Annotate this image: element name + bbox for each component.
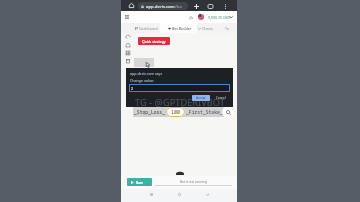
button[interactable]: app.deriv.com: [138, 2, 188, 10]
staticText: 2: [131, 86, 134, 91]
button[interactable]: Toolbar action: [124, 41, 131, 48]
button[interactable]: Dashboard: [135, 26, 158, 31]
button[interactable]: Back: [204, 191, 211, 198]
staticText: Tu: [225, 26, 230, 31]
button[interactable]: Toolbar action: [124, 57, 131, 64]
button[interactable]: More options: [221, 2, 229, 10]
staticText: Dashboard: [139, 26, 158, 31]
staticText: Change value:: [130, 78, 154, 83]
button[interactable]: Home: [176, 191, 183, 198]
button[interactable]: Accept: [192, 95, 210, 101]
button[interactable]: Bot Builder: [168, 26, 192, 31]
button[interactable]: Home: [128, 2, 135, 9]
button[interactable]: Recent apps: [148, 191, 155, 198]
button[interactable]: Run: [127, 178, 152, 186]
staticText: app.deriv.com: [146, 3, 175, 9]
staticText: _First_Stake_: [186, 109, 223, 115]
button[interactable]: Switch tabs: [206, 2, 214, 10]
button[interactable]: Cancel: [212, 95, 230, 101]
button[interactable]: Toolbar action: [124, 49, 131, 56]
staticText: 100: [171, 109, 181, 116]
staticText: app.deriv.com says: [130, 71, 163, 76]
button[interactable]: Quick strategy: [138, 37, 170, 45]
staticText: /bo: [175, 3, 182, 9]
button[interactable]: New tab: [192, 2, 200, 10]
staticText: Accept: [196, 96, 206, 100]
button[interactable]: Menu: [124, 14, 130, 20]
button[interactable]: Tu: [225, 26, 230, 31]
button[interactable]: Zoom: [222, 106, 234, 118]
staticText: Cancel: [216, 96, 226, 100]
staticText: _Stop_Loss_: [134, 109, 165, 115]
button[interactable]: Toolbar action: [124, 33, 131, 40]
button[interactable]: Notifications: [187, 14, 194, 21]
staticText: Quick strategy: [142, 39, 166, 44]
staticText: Run: [136, 180, 143, 185]
staticText: 9,880.70 USD: [208, 15, 231, 20]
button[interactable]: Charts: [198, 26, 214, 31]
staticText: TG - @GPTDERIVBOT: [135, 96, 225, 109]
staticText: Bot is not running: [180, 180, 208, 184]
staticText: Charts: [202, 26, 214, 31]
staticText: Bot Builder: [172, 26, 192, 31]
